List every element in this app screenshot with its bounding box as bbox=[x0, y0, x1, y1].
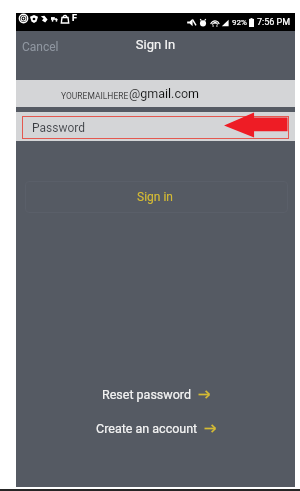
staticText: Reset password bbox=[102, 387, 192, 402]
button[interactable]: Password bbox=[22, 116, 289, 139]
staticText: 92% bbox=[232, 18, 247, 27]
staticText: YOUREMAILHERE bbox=[61, 91, 129, 101]
staticText: F bbox=[72, 13, 77, 24]
staticText: Password bbox=[32, 121, 86, 135]
button[interactable]: Reset password bbox=[96, 384, 216, 405]
button[interactable]: YOUREMAILHERE bbox=[16, 80, 295, 107]
staticText: 7:56 PM bbox=[257, 17, 291, 28]
staticText: Sign In bbox=[16, 37, 295, 52]
button[interactable]: Create an account bbox=[90, 418, 222, 439]
staticText: @gmail.com bbox=[129, 86, 200, 101]
button[interactable]: Cancel bbox=[20, 37, 61, 57]
staticText: Cancel bbox=[22, 40, 59, 54]
staticText: Sign in bbox=[137, 190, 173, 204]
staticText: Create an account bbox=[96, 421, 198, 436]
button[interactable]: Sign in bbox=[25, 181, 288, 213]
